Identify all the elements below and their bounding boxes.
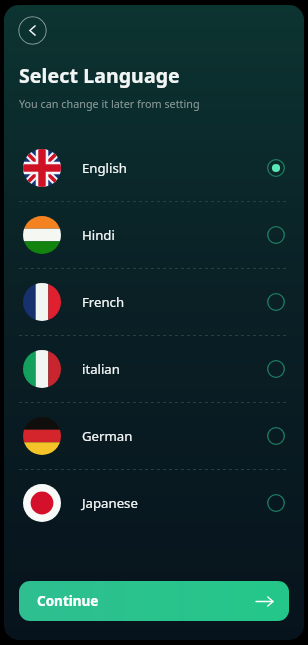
button[interactable]: English [4,135,304,201]
staticText: Hindi [82,226,115,244]
staticText: English [82,159,127,177]
button[interactable]: French [4,269,304,335]
button[interactable]: Japanese [4,470,304,536]
button[interactable]: Hindi [4,202,304,268]
button[interactable]: German [4,403,304,469]
button[interactable]: Continue [19,581,289,621]
staticText: German [82,427,133,445]
staticText: Select Language [19,62,180,89]
button[interactable]: italian [4,336,304,402]
staticText: Continue [37,592,99,610]
staticText: italian [82,360,120,378]
button[interactable]: Back [18,16,47,45]
staticText: Japanese [82,494,138,512]
staticText: French [82,293,125,311]
staticText: You can change it later from setting [19,96,200,111]
